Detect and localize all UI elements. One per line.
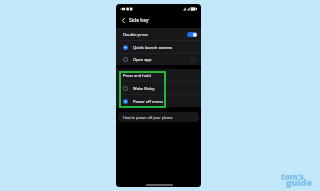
button[interactable]: How to power off your phone	[118, 112, 199, 122]
staticText: Wake Bixby	[133, 86, 155, 91]
button[interactable]: Back	[120, 17, 127, 24]
staticText: Quick launch camera	[133, 45, 173, 50]
button[interactable]: Double press	[116, 28, 201, 40]
button[interactable]: Open app	[116, 54, 201, 65]
staticText: Open app	[133, 57, 152, 62]
staticText: Double press	[123, 32, 148, 37]
button[interactable]: Quick launch camera	[116, 41, 201, 53]
button[interactable]: Power off menu	[116, 95, 201, 107]
staticText: guide	[286, 176, 313, 188]
staticText: Press and hold	[123, 73, 151, 78]
staticText: Side key	[129, 17, 149, 24]
staticText: Power off menu	[133, 99, 164, 104]
staticText: tom's	[281, 171, 304, 182]
button[interactable]: Settings	[190, 56, 197, 63]
button[interactable]: Wake Bixby	[116, 82, 201, 94]
staticText: How to power off your phone	[123, 115, 173, 120]
